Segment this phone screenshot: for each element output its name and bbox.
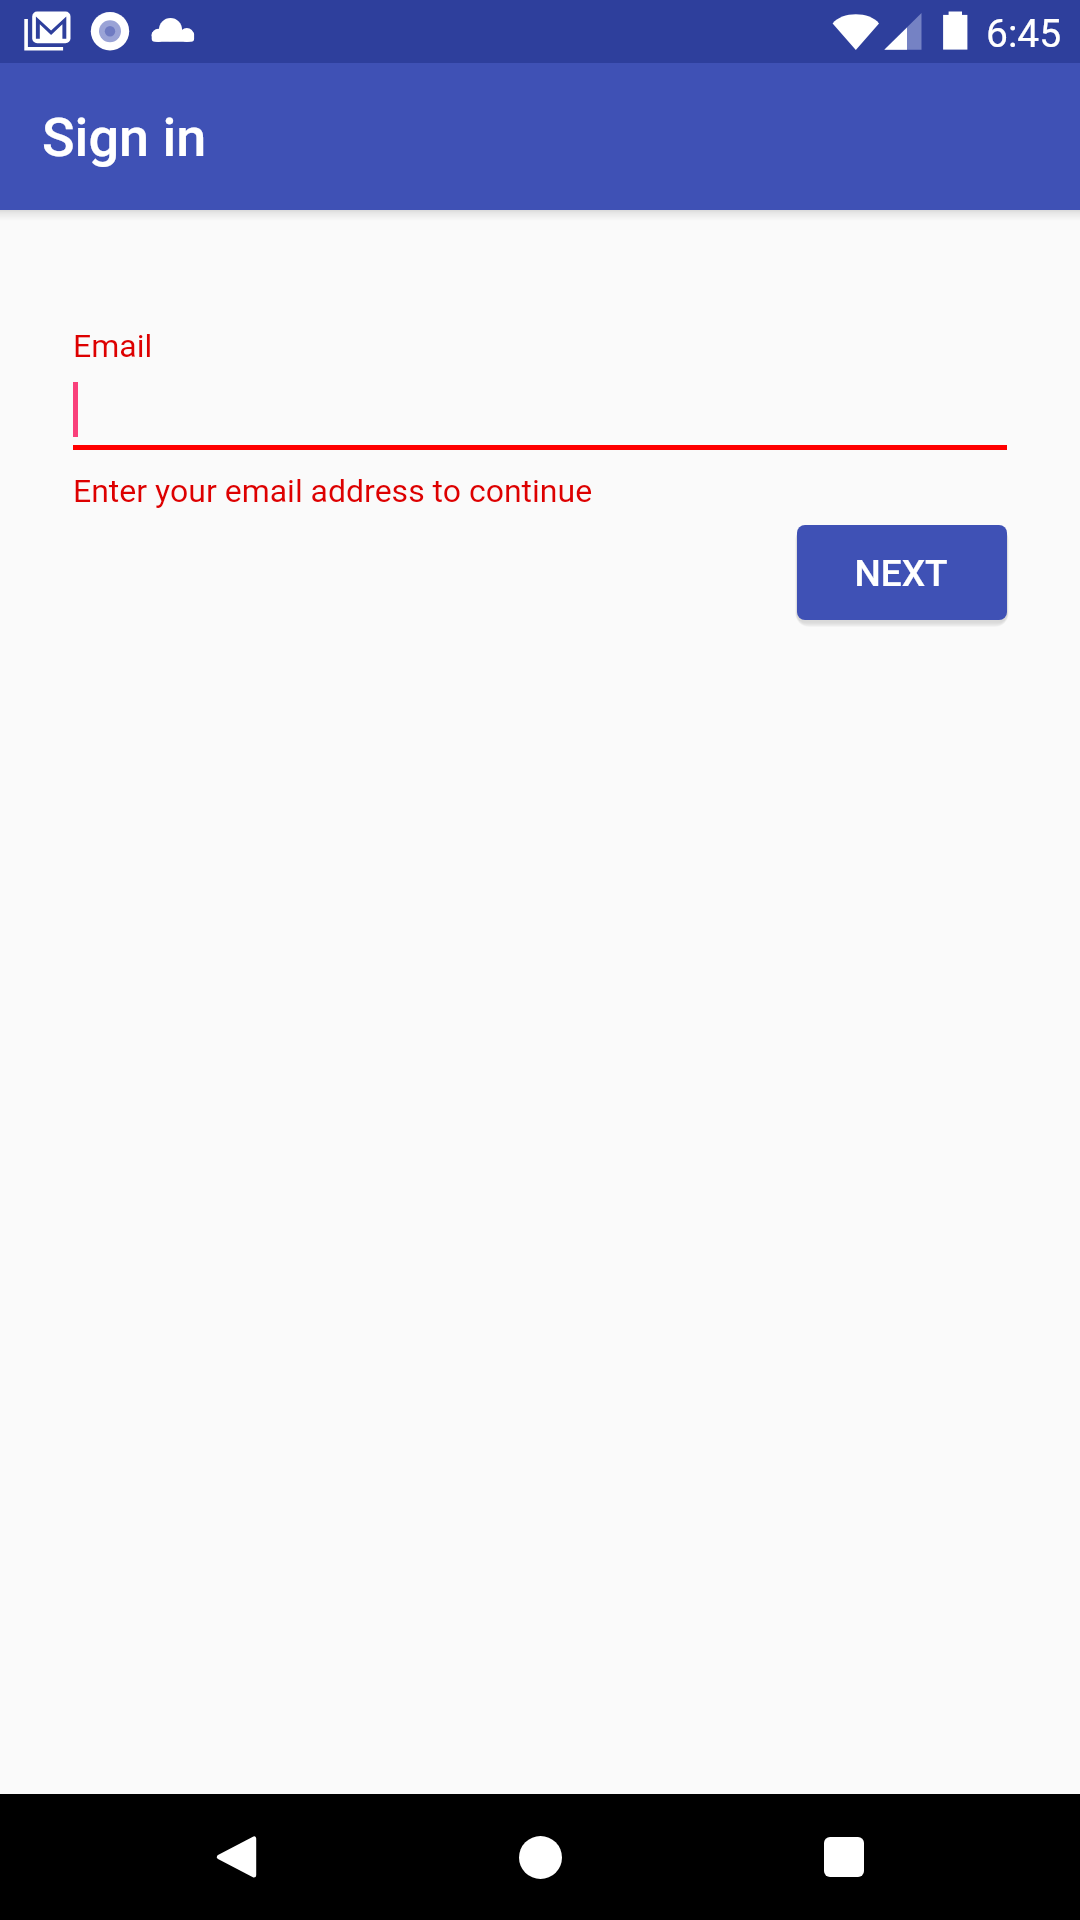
button[interactable]: Email [73, 327, 1007, 450]
staticText: Enter your email address to continue [73, 472, 593, 510]
button[interactable]: Back [173, 1794, 299, 1920]
button[interactable]: Recents [781, 1794, 907, 1920]
button[interactable]: Home [477, 1794, 603, 1920]
staticText: NEXT [854, 552, 948, 595]
staticText: 6:45 [986, 11, 1062, 57]
staticText: Sign in [42, 106, 207, 169]
button[interactable]: NEXT [797, 525, 1007, 620]
staticText: Email [73, 327, 153, 365]
